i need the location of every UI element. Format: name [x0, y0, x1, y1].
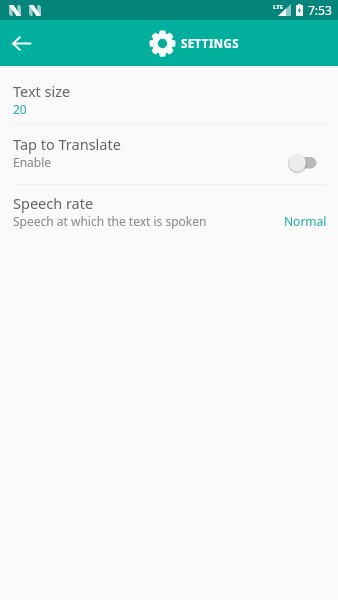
staticText: Enable	[13, 154, 52, 170]
staticText: Normal	[284, 213, 327, 229]
staticText: Text size	[13, 81, 71, 101]
staticText: Speech at which the text is spoken	[13, 213, 207, 229]
staticText: Tap to Translate	[13, 134, 121, 154]
staticText: Speech rate	[13, 193, 94, 213]
button[interactable]: Toggle Tap to Translate	[288, 154, 318, 174]
staticText: 7:53	[308, 2, 332, 18]
staticText: 20	[13, 101, 27, 117]
button[interactable]: Tap to Translate	[0, 124, 338, 184]
staticText: LTE	[273, 3, 284, 11]
button[interactable]: Back	[0, 22, 42, 64]
button[interactable]: Text size	[0, 66, 338, 124]
button[interactable]: Speech rate	[0, 184, 338, 244]
staticText: SETTINGS	[181, 36, 239, 52]
